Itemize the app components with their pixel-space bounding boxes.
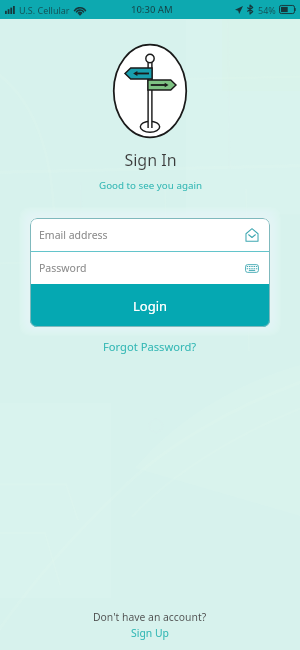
staticText: Good to see you again (99, 179, 202, 192)
other: Keyboard (245, 263, 259, 274)
staticText: Sign In (124, 149, 177, 171)
staticText: Don't have an account? (93, 610, 207, 624)
staticText: U.S. Cellular (19, 4, 70, 16)
staticText: 54% (258, 4, 276, 16)
button[interactable]: Forgot Password? (97, 336, 203, 357)
staticText: Login (133, 297, 168, 315)
button[interactable]: Email address (30, 218, 270, 251)
button[interactable]: Password (30, 252, 270, 284)
other: Battery 54 percent (279, 5, 296, 14)
button[interactable]: Login (30, 284, 270, 327)
staticText: Sign Up (131, 626, 169, 640)
other: Email (245, 228, 259, 242)
staticText: 10:30 AM (131, 3, 173, 16)
staticText: Email address (39, 228, 108, 242)
staticText: Password (39, 261, 87, 275)
button[interactable]: Sign Up (125, 625, 175, 641)
staticText: Forgot Password? (103, 339, 197, 354)
